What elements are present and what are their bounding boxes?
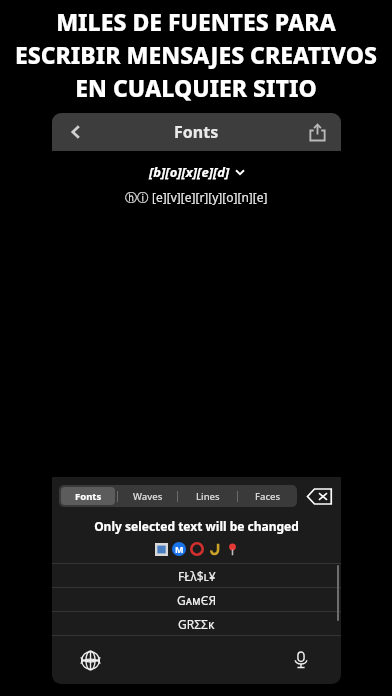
button[interactable]: Backspace: [304, 484, 334, 508]
staticText: Fonts: [174, 121, 219, 143]
staticText: Fonts: [75, 490, 102, 503]
staticText: FŁλ$ʟ¥: [178, 568, 216, 584]
button[interactable]: Share: [301, 116, 333, 148]
button[interactable]: Lines: [180, 487, 235, 505]
staticText: Only selected text will be changed: [52, 518, 341, 534]
button[interactable]: FŁλ$ʟ¥: [52, 564, 341, 587]
staticText: GᴀᴍЄЯ: [177, 592, 217, 608]
staticText: Lines: [196, 490, 220, 503]
staticText: EN CUALQUIER SITIO: [4, 72, 388, 103]
staticText: MILES DE FUENTES PARA: [4, 6, 388, 37]
staticText: ESCRIBIR MENSAJES CREATIVOS: [4, 39, 388, 70]
staticText: ⓗⓘ [e][v][e][r][y][o][n][e]: [125, 189, 268, 205]
staticText: M: [175, 543, 184, 555]
staticText: [b][o][x][e][d]: [149, 163, 230, 181]
button[interactable]: Faces: [240, 487, 295, 505]
button[interactable]: Waves: [120, 487, 175, 505]
button[interactable]: GᴀᴍЄЯ: [52, 588, 341, 611]
staticText: Faces: [255, 490, 281, 503]
button[interactable]: GRΣΣκ: [52, 612, 341, 635]
button[interactable]: Change keyboard: [74, 644, 106, 676]
button[interactable]: Fonts: [61, 487, 115, 505]
button[interactable]: Back: [58, 114, 94, 150]
staticText: Waves: [133, 490, 163, 503]
staticText: GRΣΣκ: [178, 616, 215, 632]
button[interactable]: Voice input: [285, 644, 317, 676]
